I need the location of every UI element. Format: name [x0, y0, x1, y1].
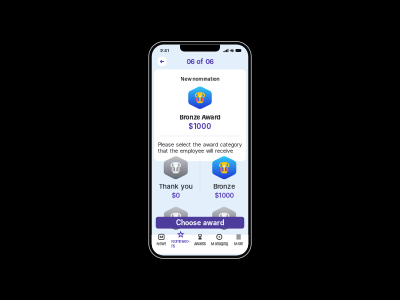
button[interactable]: Thank you: [152, 156, 200, 199]
button[interactable]: Nominations: [171, 231, 190, 248]
staticText: Bronze Award: [179, 113, 220, 121]
staticText: $0: [172, 192, 180, 199]
staticText: 06 of 06: [186, 57, 213, 66]
staticText: Awards: [194, 241, 206, 246]
staticText: $1000: [215, 192, 234, 199]
button[interactable]: Back: [156, 55, 169, 68]
button[interactable]: Bronze: [200, 156, 248, 199]
button[interactable]: Managing: [210, 234, 229, 246]
button[interactable]: News: [152, 234, 171, 246]
staticText: $1000: [188, 122, 211, 131]
staticText: Choose award: [176, 218, 224, 227]
staticText: News: [156, 241, 166, 246]
staticText: More: [234, 241, 243, 246]
staticText: Please select the award category that th…: [158, 141, 242, 154]
staticText: New nomination: [180, 76, 219, 82]
button[interactable]: More: [229, 234, 248, 246]
staticText: Nominations: [171, 239, 190, 248]
staticText: Bronze: [213, 182, 235, 190]
staticText: Managing: [211, 241, 228, 246]
button[interactable]: Choose award: [156, 217, 244, 229]
staticText: 9:41: [160, 48, 169, 53]
button[interactable]: Awards: [190, 234, 210, 246]
staticText: Thank you: [159, 182, 193, 190]
